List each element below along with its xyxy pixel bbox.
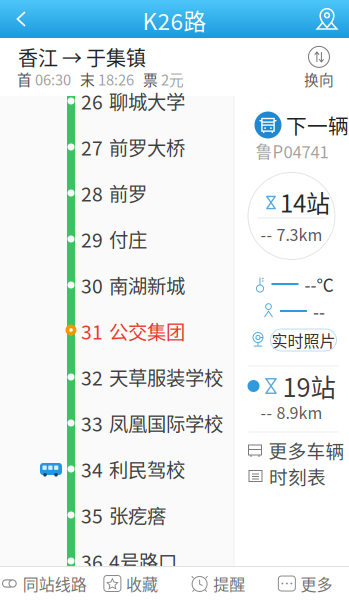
staticText: 公交集团 — [109, 317, 185, 345]
staticText: 同站线路 — [23, 572, 87, 595]
staticText: 26 — [81, 87, 103, 115]
staticText: 30 — [81, 271, 103, 299]
button[interactable]: 同站线路 — [0, 567, 87, 600]
staticText: 19站 — [282, 368, 335, 404]
staticText: 换向 — [304, 68, 334, 90]
staticText: 34 — [81, 455, 103, 483]
staticText: -- 7.3km — [260, 222, 322, 246]
staticText: 首 — [17, 68, 32, 90]
staticText: 付庄 — [109, 225, 147, 253]
staticText: 利民驾校 — [109, 455, 185, 483]
staticText: 4号路口 — [109, 547, 177, 575]
staticText: 南湖新城 — [109, 271, 185, 299]
staticText: 14站 — [280, 185, 330, 219]
button[interactable]: 提醒 — [174, 567, 262, 600]
staticText: 香江 → 于集镇 — [18, 42, 146, 71]
button[interactable]: 实时照片 — [270, 329, 336, 351]
staticText: 聊城大学 — [109, 87, 185, 115]
staticText: 天草服装学校 — [109, 363, 223, 391]
button[interactable]: 更多 — [262, 567, 349, 600]
staticText: 28 — [81, 179, 103, 207]
staticText: -- — [313, 298, 325, 324]
staticText: 前罗大桥 — [109, 133, 185, 161]
staticText: 35 — [81, 501, 103, 529]
button[interactable]: 收藏 — [87, 567, 174, 600]
staticText: 2元 — [161, 68, 184, 90]
button[interactable]: 35 — [81, 493, 233, 537]
staticText: 鲁P04741 — [255, 139, 328, 163]
staticText: 31 — [81, 317, 103, 345]
button[interactable]: 29 — [81, 217, 233, 261]
staticText: 更多 — [300, 572, 332, 595]
button[interactable]: 34 — [81, 447, 233, 491]
staticText: 末 — [80, 68, 95, 90]
button[interactable]: 30 — [81, 263, 233, 307]
button[interactable]: 36 — [81, 539, 233, 583]
button[interactable]: 更多车辆 — [247, 431, 344, 468]
button[interactable]: 26 — [81, 79, 233, 123]
staticText: K26路 — [142, 4, 206, 36]
staticText: 36 — [81, 547, 103, 575]
staticText: 时刻表 — [269, 462, 326, 489]
staticText: 29 — [81, 225, 103, 253]
staticText: 06:30 — [35, 68, 71, 90]
button[interactable]: 时刻表 — [248, 457, 326, 494]
staticText: 收藏 — [126, 572, 158, 595]
button[interactable]: 27 — [81, 125, 233, 169]
button[interactable]: 31 — [81, 309, 233, 353]
staticText: 张疙瘩 — [109, 501, 166, 529]
staticText: 33 — [81, 409, 103, 437]
button[interactable]: 换向 — [294, 43, 344, 93]
button[interactable]: Map — [306, 0, 348, 38]
staticText: 更多车辆 — [268, 436, 344, 463]
button[interactable]: 32 — [81, 355, 233, 399]
staticText: 18:26 — [98, 68, 134, 90]
staticText: 票 — [143, 68, 158, 90]
button[interactable]: Back — [0, 0, 42, 38]
staticText: -- 8.9km — [260, 400, 322, 424]
staticText: 27 — [81, 133, 103, 161]
staticText: 下一辆 — [286, 110, 349, 140]
staticText: 前罗 — [109, 179, 147, 207]
staticText: 实时照片 — [271, 328, 335, 352]
staticText: --℃ — [304, 271, 333, 297]
button[interactable]: 33 — [81, 401, 233, 445]
button[interactable]: 28 — [81, 171, 233, 215]
staticText: 凤凰国际学校 — [109, 409, 223, 437]
staticText: 32 — [81, 363, 103, 391]
staticText: 提醒 — [213, 572, 245, 595]
